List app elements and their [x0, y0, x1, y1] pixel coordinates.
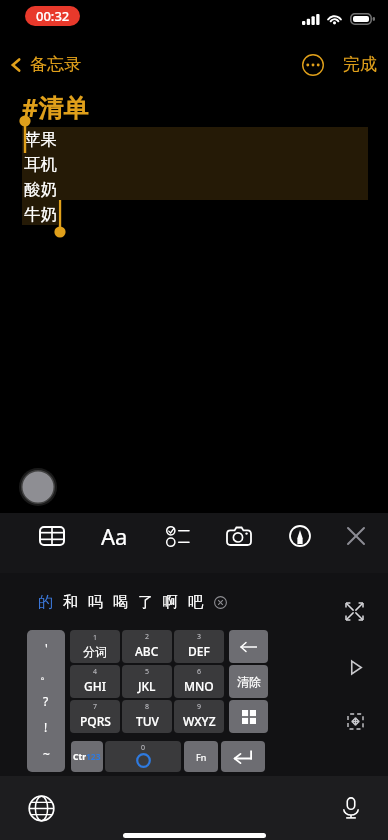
button[interactable]: 清除	[229, 665, 268, 698]
staticText: !	[44, 719, 48, 735]
staticText: 和	[63, 593, 78, 612]
staticText: 1	[93, 633, 98, 643]
button[interactable]: Expand	[337, 594, 371, 628]
staticText: 分词	[83, 644, 107, 659]
staticText: 3	[197, 632, 202, 642]
staticText: 8	[145, 702, 150, 712]
button[interactable]: Keyboard layout	[229, 700, 268, 733]
staticText: 吗	[88, 593, 103, 612]
button[interactable]: 2	[122, 630, 172, 663]
staticText: ~	[43, 746, 50, 762]
staticText: 喝	[113, 593, 128, 612]
staticText: #清单	[22, 90, 89, 124]
staticText: 123	[86, 751, 101, 763]
button[interactable]: Move	[338, 704, 372, 738]
button[interactable]: 4	[70, 665, 120, 698]
button[interactable]: Recording 00:32	[25, 6, 80, 26]
button[interactable]: Camera	[219, 516, 259, 556]
staticText: 牛奶	[24, 204, 57, 225]
button[interactable]: Punctuation	[27, 630, 65, 772]
staticText: 6	[197, 667, 202, 677]
button[interactable]: 吧	[183, 582, 208, 622]
staticText: DEF	[188, 643, 210, 659]
staticText: 0	[141, 743, 146, 753]
staticText: 备忘录	[30, 54, 81, 75]
staticText: PQRS	[80, 713, 111, 729]
button[interactable]: 7	[70, 700, 120, 733]
button[interactable]: Play	[338, 650, 372, 684]
button[interactable]: 吗	[83, 582, 108, 622]
button[interactable]: 9	[174, 700, 224, 733]
button[interactable]: More options	[296, 48, 329, 81]
button[interactable]: 完成	[343, 54, 377, 75]
staticText: TUV	[136, 713, 159, 729]
button[interactable]: Return	[221, 741, 265, 772]
button[interactable]: 5	[122, 665, 172, 698]
staticText: Aa	[101, 521, 128, 551]
button[interactable]: Aa	[94, 519, 134, 553]
button[interactable]: Clear input	[208, 582, 233, 622]
staticText: Fn	[196, 751, 207, 763]
staticText: '	[45, 640, 48, 656]
staticText: MNO	[184, 678, 214, 694]
staticText: 完成	[343, 54, 377, 75]
staticText: 苹果	[24, 129, 57, 150]
button[interactable]: Switch keyboard	[24, 791, 58, 825]
staticText: 2	[145, 632, 150, 642]
staticText: 清除	[237, 674, 261, 689]
button[interactable]: 备忘录	[6, 54, 81, 75]
staticText: 啊	[163, 593, 178, 612]
staticText: 的	[38, 593, 53, 612]
staticText: 吧	[188, 593, 203, 612]
button[interactable]: Switch to numbers	[71, 741, 103, 772]
button[interactable]: Space	[105, 741, 181, 772]
staticText: 耳机	[24, 154, 57, 175]
button[interactable]: 1	[70, 630, 120, 663]
button[interactable]: 啊	[158, 582, 183, 622]
button[interactable]: 6	[174, 665, 224, 698]
staticText: 7	[93, 702, 98, 712]
button[interactable]: 喝	[108, 582, 133, 622]
staticText: 9	[197, 702, 202, 712]
staticText: GHI	[84, 678, 106, 694]
staticText: ABC	[135, 643, 159, 659]
staticText: 了	[138, 593, 153, 612]
button[interactable]: Backspace	[229, 630, 268, 663]
staticText: JKL	[138, 678, 156, 694]
staticText: ?	[43, 693, 49, 709]
button[interactable]: Assistive touch	[18, 467, 58, 507]
button[interactable]: Close	[336, 516, 376, 556]
button[interactable]: 和	[58, 582, 83, 622]
button[interactable]: Table	[32, 516, 72, 556]
button[interactable]: 8	[122, 700, 172, 733]
button[interactable]: Markup	[280, 516, 320, 556]
button[interactable]: Fn	[184, 741, 218, 772]
staticText: 酸奶	[24, 179, 57, 200]
staticText: Ctr	[73, 751, 86, 763]
staticText: 4	[93, 667, 98, 677]
button[interactable]: Checklist	[157, 516, 197, 556]
staticText: WXYZ	[183, 713, 216, 729]
staticText: 5	[145, 667, 150, 677]
button[interactable]: Dictation	[334, 791, 368, 825]
button[interactable]: 了	[133, 582, 158, 622]
staticText: 00:32	[36, 7, 70, 25]
button[interactable]: 3	[174, 630, 224, 663]
staticText: 。	[40, 667, 52, 682]
button[interactable]: 的	[33, 582, 58, 622]
